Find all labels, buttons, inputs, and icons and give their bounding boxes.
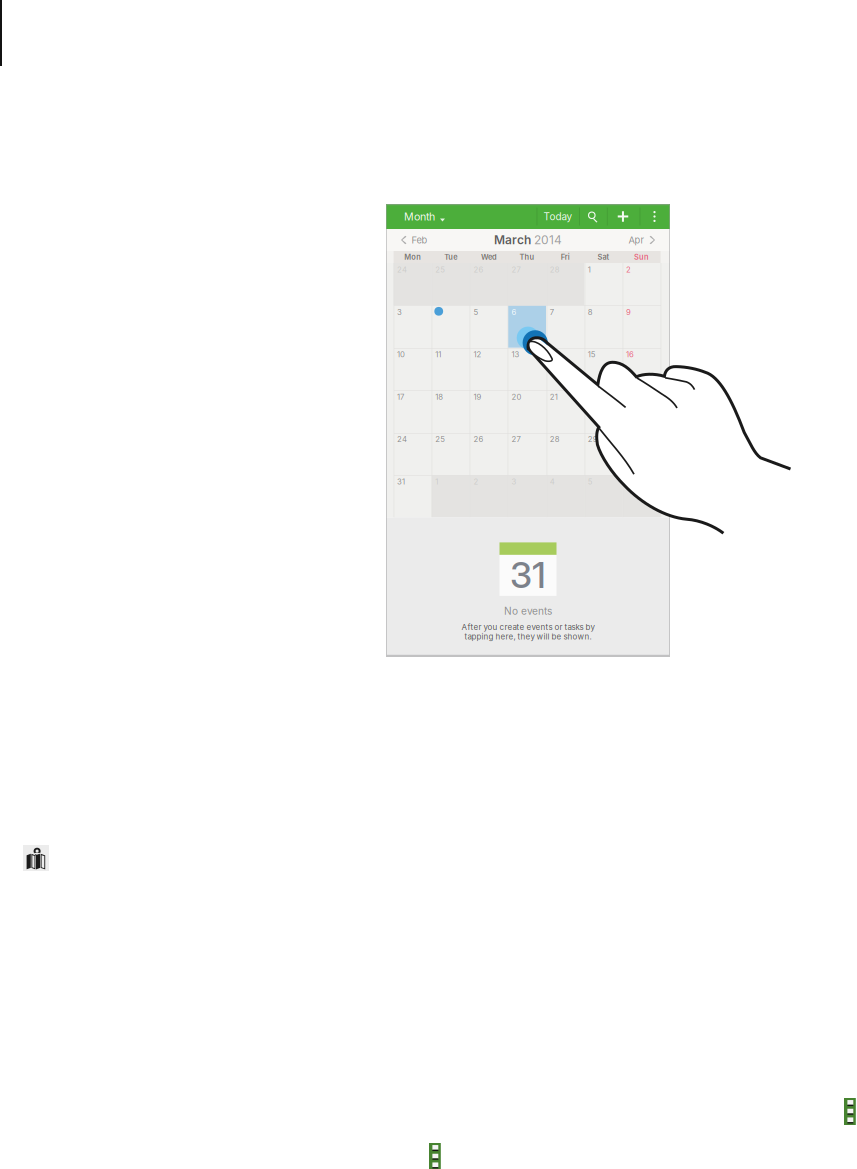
staticText: Fri: [561, 252, 570, 261]
staticText: 31: [510, 553, 546, 597]
button[interactable]: Add event: [607, 204, 639, 229]
staticText: Apr: [629, 234, 645, 246]
staticText: 26: [473, 435, 483, 444]
staticText: 3: [397, 307, 402, 317]
staticText: After you create events or tasks by: [461, 622, 594, 632]
staticText: Wed: [481, 252, 497, 261]
staticText: 24: [397, 265, 407, 274]
staticText: 10: [397, 350, 405, 359]
staticText: 26: [473, 265, 483, 274]
staticText: 16: [626, 350, 634, 359]
staticText: 2: [626, 265, 631, 274]
staticText: 21: [550, 392, 558, 402]
staticText: 1: [588, 265, 591, 274]
staticText: 11: [435, 350, 441, 359]
staticText: 24: [397, 435, 407, 444]
staticText: 28: [550, 435, 560, 444]
staticText: 2: [473, 477, 478, 486]
staticText: Sun: [634, 252, 649, 261]
staticText: 2014: [534, 233, 562, 247]
staticText: 25: [435, 435, 445, 444]
staticText: Sat: [597, 252, 609, 261]
staticText: 7: [550, 307, 554, 317]
staticText: 13: [511, 350, 519, 359]
button[interactable]: More options: [639, 204, 670, 229]
button[interactable]: Month: [386, 204, 445, 229]
staticText: 27: [511, 435, 520, 444]
staticText: 15: [588, 350, 596, 359]
staticText: No events: [504, 605, 552, 617]
staticText: 9: [626, 307, 631, 317]
staticText: 6: [626, 477, 631, 486]
staticText: 25: [435, 265, 445, 274]
staticText: 17: [397, 392, 404, 402]
staticText: Tue: [444, 252, 457, 261]
staticText: 6: [511, 307, 516, 317]
staticText: 1: [435, 477, 438, 486]
staticText: 12: [473, 350, 481, 359]
staticText: 8: [588, 307, 593, 317]
staticText: Mon: [404, 252, 421, 261]
staticText: 3: [511, 477, 516, 486]
staticText: 28: [550, 265, 560, 274]
staticText: 18: [435, 392, 443, 402]
staticText: 4: [550, 477, 555, 486]
staticText: tapping here, they will be shown.: [464, 632, 591, 641]
staticText: Today: [543, 210, 572, 223]
staticText: 31: [397, 477, 405, 486]
staticText: 20: [511, 392, 521, 402]
staticText: 5: [588, 477, 593, 486]
staticText: Thu: [520, 252, 535, 261]
staticText: 5: [473, 307, 478, 317]
staticText: 27: [511, 265, 520, 274]
button[interactable]: Feb: [386, 229, 427, 251]
button[interactable]: Apr: [629, 229, 670, 251]
button[interactable]: Today: [537, 204, 579, 229]
staticText: 14: [550, 350, 558, 359]
staticText: Feb: [411, 234, 427, 246]
staticText: 4: [435, 307, 440, 317]
staticText: Month: [404, 210, 435, 223]
staticText: 29: [588, 435, 598, 444]
staticText: 19: [473, 392, 481, 402]
button[interactable]: Search: [579, 204, 607, 229]
staticText: March: [494, 233, 531, 247]
